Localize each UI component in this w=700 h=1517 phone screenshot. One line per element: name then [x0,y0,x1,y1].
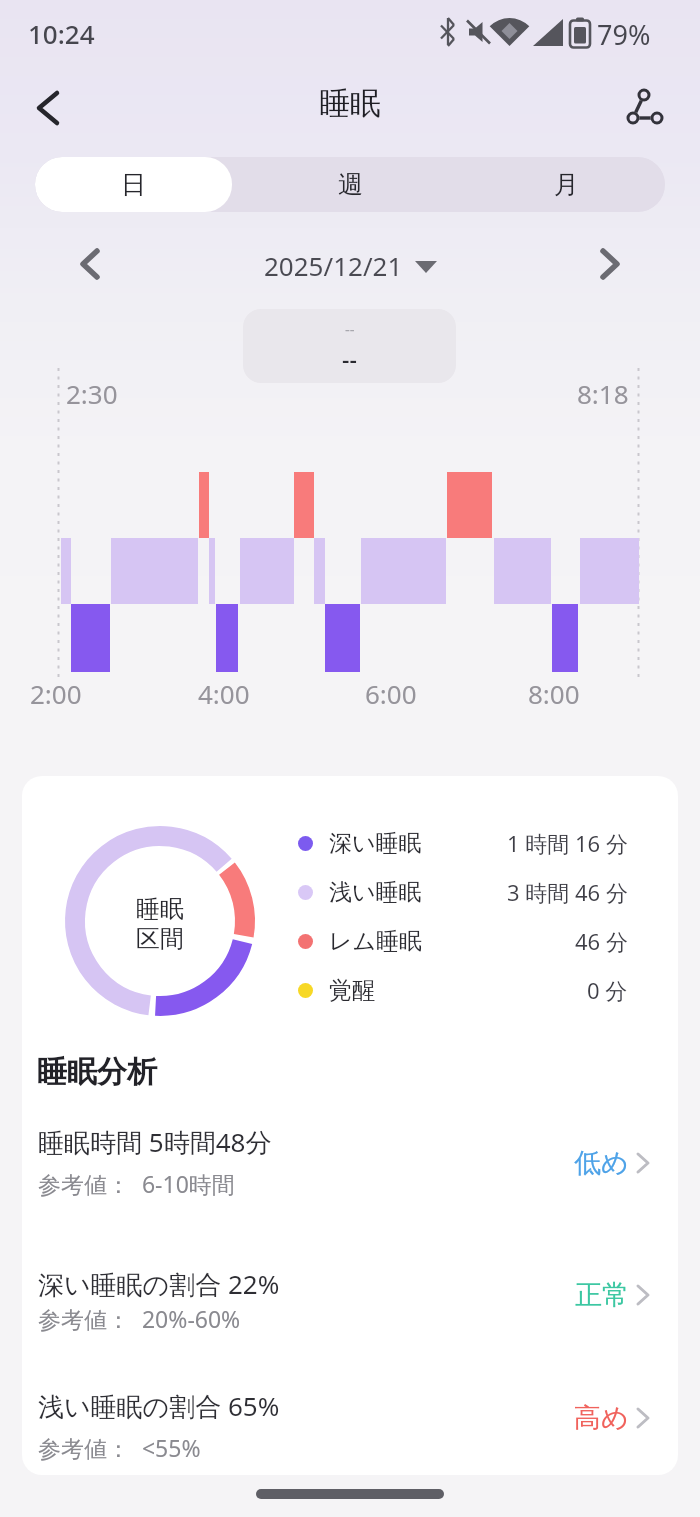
staticText: レム睡眠 [329,927,423,956]
staticText: 深い睡眠の割合 22% [38,1266,280,1302]
button[interactable]: 浅い睡眠の割合 65% [22,1378,678,1475]
staticText: 覚醒 [329,976,375,1005]
staticText: 低め [574,1146,629,1180]
staticText: 浅い睡眠 [329,878,422,907]
staticText: 月 [554,169,579,200]
staticText: 2:00 [30,676,82,711]
staticText: 3 時間 46 分 [507,877,628,907]
staticText: 6:00 [365,676,417,711]
staticText: 区間 [136,924,184,954]
staticText: 1 時間 16 分 [507,828,628,858]
button[interactable]: 週 [232,157,468,212]
staticText: 参考値： <55% [38,1432,201,1463]
button[interactable] [24,84,72,132]
button[interactable]: 深い睡眠の割合 22% [22,1256,678,1374]
staticText: 睡眠分析 [37,1053,157,1091]
staticText: 参考値： 20%-60% [38,1303,241,1334]
staticText: -- [345,319,355,339]
button[interactable] [614,80,670,136]
staticText: 睡眠 [319,84,381,123]
staticText: 週 [338,169,363,200]
staticText: 2:30 [66,376,118,411]
staticText: -- [342,343,357,374]
staticText: 4:00 [198,676,250,711]
button[interactable] [66,240,114,288]
staticText: 睡眠時間 5時間48分 [38,1124,272,1160]
button[interactable]: 睡眠時間 5時間48分 [22,1116,678,1234]
staticText: 2025/12/21 [264,248,403,283]
staticText: 日 [121,169,146,200]
staticText: 10:24 [28,16,95,51]
button[interactable]: 月 [468,157,665,212]
button[interactable]: 2025/12/21 [264,248,437,283]
staticText: 深い睡眠 [329,829,422,858]
staticText: 睡眠 [136,894,184,924]
staticText: 正常 [575,1278,629,1312]
staticText: 参考値： 6-10時間 [38,1168,235,1199]
button[interactable] [586,240,634,288]
staticText: 8:18 [577,376,629,411]
staticText: 高め [574,1401,629,1435]
staticText: 0 分 [587,975,628,1005]
staticText: 46 分 [575,926,628,956]
staticText: 8:00 [528,676,580,711]
button[interactable]: 日 [35,157,232,212]
staticText: 79% [597,16,651,53]
staticText: 浅い睡眠の割合 65% [38,1388,280,1424]
